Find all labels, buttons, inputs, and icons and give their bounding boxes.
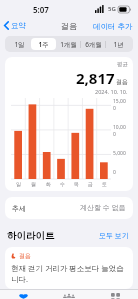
button[interactable]: 요약	[0, 19, 30, 32]
button[interactable]: 추세	[5, 197, 133, 219]
staticText: 목	[74, 181, 79, 187]
staticText: 2,817	[76, 68, 115, 88]
staticText: 6개월	[85, 40, 102, 49]
staticText: 현재 걷기 거리가 평소보다 늘었습니다.	[11, 263, 127, 284]
staticText: 수	[60, 181, 65, 187]
staticText: 하이라이트	[7, 230, 55, 242]
staticText: 일	[16, 181, 21, 187]
staticText: 1일	[14, 40, 25, 49]
button[interactable]: 걸음	[5, 247, 133, 289]
button[interactable]: 1개월	[56, 38, 81, 50]
staticText: 5,000	[113, 150, 126, 157]
button[interactable]: 1년	[106, 38, 131, 50]
staticText: 월	[31, 181, 36, 187]
button[interactable]: 공유	[46, 290, 92, 299]
staticText: 화	[46, 181, 51, 187]
staticText: 15,000	[113, 98, 128, 112]
staticText: 걸음	[116, 78, 128, 86]
staticText: 토	[102, 181, 107, 187]
staticText: 금	[88, 181, 93, 187]
button[interactable]: 1일	[7, 38, 31, 50]
staticText: 요약	[11, 21, 26, 30]
button[interactable]: 1주	[31, 38, 56, 50]
staticText: 걸음	[61, 21, 77, 31]
button[interactable]: 모두 보기	[97, 229, 131, 243]
staticText: 평균	[117, 61, 128, 68]
staticText: 5:07	[33, 4, 49, 15]
staticText: 추세	[12, 204, 26, 213]
staticText: 5G	[108, 5, 116, 13]
button[interactable]: 요약	[0, 290, 46, 299]
staticText: 1년	[113, 40, 124, 49]
staticText: 10,000	[113, 124, 128, 138]
staticText: 걸음	[19, 252, 31, 260]
button[interactable]: 6개월	[81, 38, 106, 50]
button[interactable]: 데이터 추가	[88, 19, 138, 33]
staticText: 1개월	[60, 40, 77, 49]
staticText: 0	[113, 169, 116, 176]
button[interactable]: 검색	[92, 290, 138, 299]
staticText: 계산할 수 없음	[80, 203, 126, 213]
staticText: 2024. 10. 10.	[95, 88, 128, 95]
staticText: 1주	[38, 40, 49, 49]
